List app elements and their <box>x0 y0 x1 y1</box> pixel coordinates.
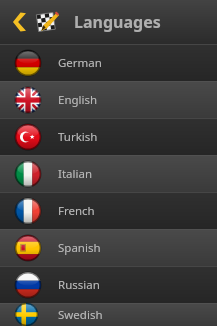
button[interactable]: Spanish <box>0 229 217 266</box>
button[interactable]: English <box>0 81 217 118</box>
button[interactable]: German <box>0 44 217 81</box>
staticText: Spanish <box>58 240 101 256</box>
staticText: French <box>58 203 95 219</box>
staticText: English <box>58 92 98 108</box>
staticText: Italian <box>58 166 92 182</box>
staticText: Turkish <box>58 129 98 145</box>
button[interactable]: Swedish <box>0 303 217 326</box>
button[interactable]: Edit languages <box>34 9 60 35</box>
button[interactable]: Italian <box>0 155 217 192</box>
staticText: Languages <box>74 11 161 33</box>
button[interactable]: Russian <box>0 266 217 303</box>
staticText: German <box>58 55 102 71</box>
staticText: Swedish <box>58 307 103 323</box>
staticText: Russian <box>58 277 100 293</box>
button[interactable]: Back <box>8 7 30 37</box>
button[interactable]: French <box>0 192 217 229</box>
button[interactable]: Turkish <box>0 118 217 155</box>
